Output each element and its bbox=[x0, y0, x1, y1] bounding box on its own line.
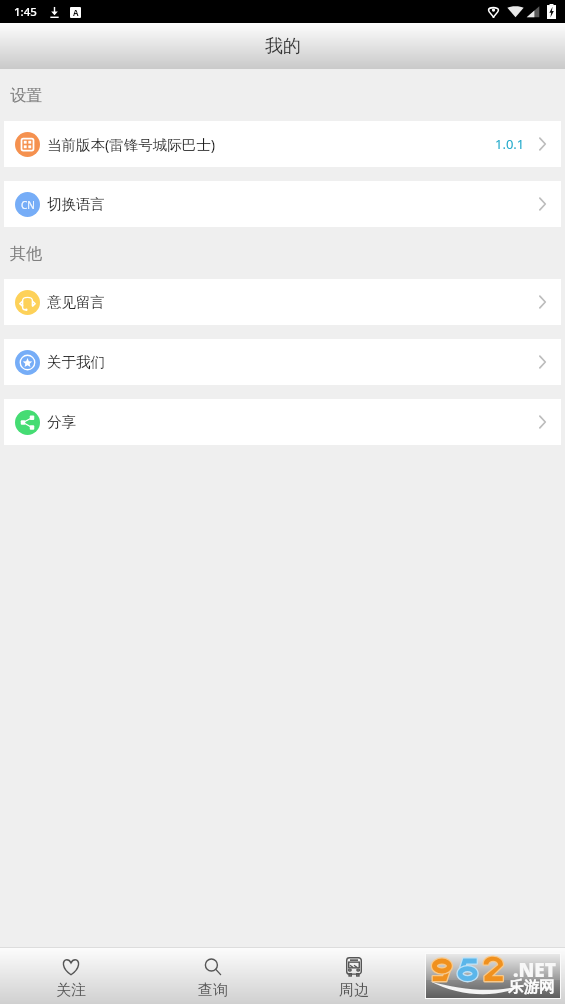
button[interactable]: Search bbox=[142, 953, 283, 1000]
staticText: 1.0.1 bbox=[495, 135, 525, 153]
staticText: 关注 bbox=[56, 981, 86, 1000]
staticText: CN bbox=[21, 198, 35, 212]
button[interactable]: 意见留言 bbox=[4, 279, 561, 325]
staticText: 查询 bbox=[198, 981, 228, 1000]
button[interactable]: Nearby bbox=[283, 953, 424, 1000]
staticText: 1:45 bbox=[14, 4, 37, 20]
staticText: 周边 bbox=[339, 981, 369, 1000]
button[interactable]: 关于我们 bbox=[4, 339, 561, 385]
staticText: 其他 bbox=[10, 243, 43, 263]
staticText: 意见留言 bbox=[47, 293, 105, 311]
staticText: 当前版本(雷锋号城际巴士) bbox=[47, 134, 216, 154]
staticText: 我的 bbox=[480, 981, 510, 1000]
staticText: 设置 bbox=[10, 85, 43, 105]
button[interactable]: Follow bbox=[0, 953, 142, 1000]
button[interactable]: 当前版本(雷锋号城际巴士) bbox=[4, 121, 561, 167]
staticText: 我的 bbox=[265, 35, 301, 58]
staticText: .NET bbox=[513, 957, 556, 983]
staticText: A bbox=[73, 7, 79, 18]
staticText: 切换语言 bbox=[47, 195, 105, 213]
staticText: 分享 bbox=[47, 413, 76, 431]
button[interactable]: Mine bbox=[424, 953, 565, 1000]
staticText: 乐游网 bbox=[508, 977, 555, 997]
button[interactable]: CN bbox=[4, 181, 561, 227]
button[interactable]: 分享 bbox=[4, 399, 561, 445]
staticText: 关于我们 bbox=[47, 353, 105, 371]
